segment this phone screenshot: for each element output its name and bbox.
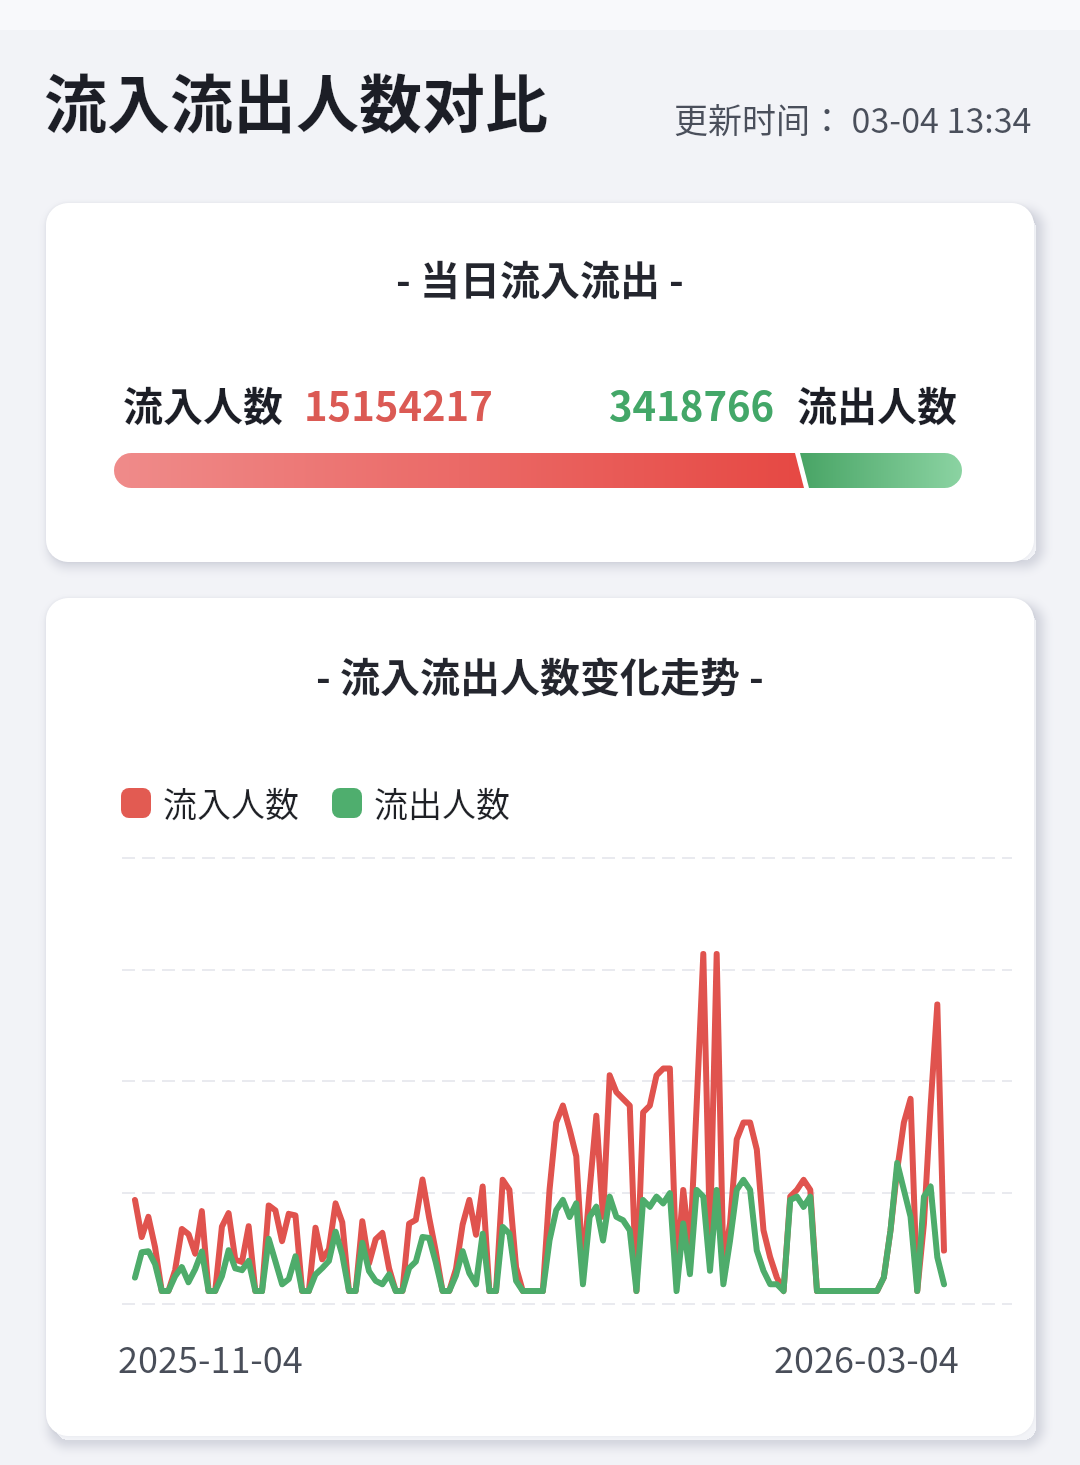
staticText: 2025-11-04 (118, 1331, 303, 1383)
staticText: 流入流出人数对比 (44, 54, 548, 145)
staticText: 流入人数 (163, 778, 299, 827)
button[interactable]: - 流入流出人数变化走势 - (46, 598, 1034, 1436)
button[interactable]: - 当日流入流出 - (46, 203, 1034, 562)
staticText: 2026-03-04 (774, 1331, 959, 1383)
staticText: 更新时间： 03-04 13:34 (674, 94, 1032, 143)
staticText: 3418766 (609, 375, 775, 433)
staticText: 流出人数 (797, 375, 957, 433)
staticText: - 当日流入流出 - (396, 249, 684, 307)
staticText: 流入人数 (123, 375, 283, 433)
staticText: 15154217 (304, 375, 493, 433)
staticText: 流出人数 (374, 778, 510, 827)
staticText: - 流入流出人数变化走势 - (316, 646, 764, 704)
